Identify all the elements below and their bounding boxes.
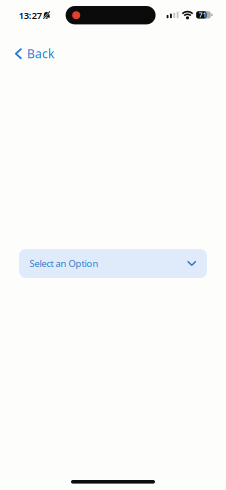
staticText: 71 <box>199 10 207 19</box>
staticText: 13:27 <box>19 9 42 21</box>
button[interactable]: Select an Option <box>19 249 207 278</box>
staticText: Back <box>27 46 54 62</box>
staticText: Select an Option <box>29 257 98 270</box>
button[interactable]: Back <box>0 40 62 68</box>
